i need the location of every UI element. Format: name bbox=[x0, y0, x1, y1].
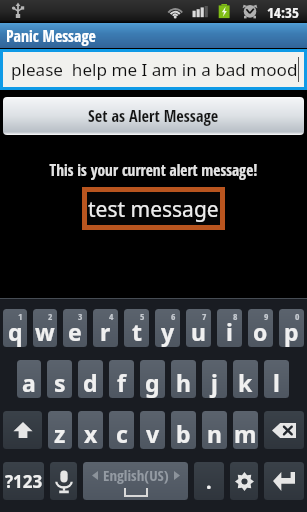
button[interactable]: q bbox=[3, 309, 27, 347]
staticText: w bbox=[35, 316, 55, 347]
button[interactable]: English(US) bbox=[83, 462, 188, 500]
staticText: m bbox=[234, 418, 257, 449]
staticText: n bbox=[207, 418, 222, 449]
staticText: y bbox=[161, 316, 175, 347]
staticText: please help me I am in a bad mood bbox=[11, 58, 298, 81]
staticText: test message bbox=[88, 195, 219, 224]
button[interactable]: m bbox=[233, 411, 258, 449]
button[interactable]: b bbox=[171, 411, 196, 449]
staticText: 7 bbox=[202, 310, 207, 323]
staticText: Panic Message bbox=[6, 25, 96, 47]
button[interactable]: y bbox=[155, 309, 180, 347]
button[interactable]: ?123 bbox=[3, 462, 44, 500]
staticText: 14:35 bbox=[267, 2, 299, 22]
staticText: 0 bbox=[295, 310, 300, 323]
staticText: This is your current alert message! bbox=[0, 160, 307, 181]
button[interactable]: Delete bbox=[264, 411, 304, 449]
staticText: 2 bbox=[48, 310, 53, 323]
staticText: t bbox=[132, 316, 142, 347]
button[interactable]: o bbox=[248, 309, 273, 347]
staticText: 5 bbox=[140, 310, 145, 323]
staticText: English(US) bbox=[103, 465, 169, 485]
staticText: 6 bbox=[171, 310, 176, 323]
staticText: d bbox=[83, 367, 98, 398]
staticText: p bbox=[284, 316, 299, 347]
staticText: . bbox=[206, 468, 212, 495]
staticText: z bbox=[54, 418, 66, 449]
button[interactable]: test message bbox=[87, 192, 220, 225]
button[interactable]: v bbox=[140, 411, 165, 449]
button[interactable]: i bbox=[217, 309, 242, 347]
button[interactable]: Shift bbox=[3, 411, 42, 449]
button[interactable]: p bbox=[279, 309, 304, 347]
button[interactable]: n bbox=[202, 411, 227, 449]
button[interactable]: please help me I am in a bad mood bbox=[3, 52, 304, 87]
staticText: ?123 bbox=[5, 470, 43, 493]
button[interactable]: Voice input bbox=[50, 462, 77, 500]
button[interactable]: d bbox=[78, 360, 103, 398]
button[interactable]: t bbox=[124, 309, 149, 347]
staticText: 3 bbox=[78, 310, 83, 323]
staticText: g bbox=[145, 367, 160, 398]
staticText: j bbox=[211, 367, 218, 398]
button[interactable]: u bbox=[186, 309, 211, 347]
staticText: b bbox=[176, 418, 191, 449]
button[interactable]: e bbox=[63, 309, 87, 347]
staticText: u bbox=[191, 316, 206, 347]
button[interactable]: w bbox=[33, 309, 57, 347]
button[interactable]: Enter bbox=[264, 462, 304, 500]
button[interactable]: Settings bbox=[230, 462, 258, 500]
staticText: 4 bbox=[109, 310, 114, 323]
button[interactable]: r bbox=[93, 309, 118, 347]
button[interactable]: Set as Alert Message bbox=[3, 97, 304, 135]
button[interactable]: f bbox=[109, 360, 134, 398]
staticText: i bbox=[226, 316, 233, 347]
button[interactable]: l bbox=[264, 360, 289, 398]
staticText: 8 bbox=[233, 310, 238, 323]
staticText: c bbox=[116, 418, 128, 449]
staticText: x bbox=[84, 418, 98, 449]
staticText: Set as Alert Message bbox=[88, 105, 219, 127]
staticText: f bbox=[117, 367, 126, 398]
button[interactable]: j bbox=[202, 360, 227, 398]
staticText: s bbox=[54, 367, 66, 398]
staticText: a bbox=[22, 367, 36, 398]
staticText: v bbox=[146, 418, 160, 449]
staticText: o bbox=[253, 316, 268, 347]
button[interactable]: a bbox=[17, 360, 41, 398]
staticText: k bbox=[238, 367, 253, 398]
staticText: l bbox=[273, 367, 280, 398]
button[interactable]: s bbox=[47, 360, 72, 398]
button[interactable]: x bbox=[78, 411, 103, 449]
button[interactable]: g bbox=[140, 360, 165, 398]
button[interactable]: z bbox=[48, 411, 72, 449]
button[interactable]: k bbox=[233, 360, 258, 398]
staticText: 9 bbox=[264, 310, 269, 323]
staticText: r bbox=[100, 316, 111, 347]
button[interactable]: h bbox=[171, 360, 196, 398]
staticText: q bbox=[8, 316, 23, 347]
staticText: 1 bbox=[18, 310, 23, 323]
button[interactable]: c bbox=[109, 411, 134, 449]
staticText: h bbox=[176, 367, 191, 398]
button[interactable]: . bbox=[194, 462, 224, 500]
staticText: e bbox=[68, 316, 82, 347]
